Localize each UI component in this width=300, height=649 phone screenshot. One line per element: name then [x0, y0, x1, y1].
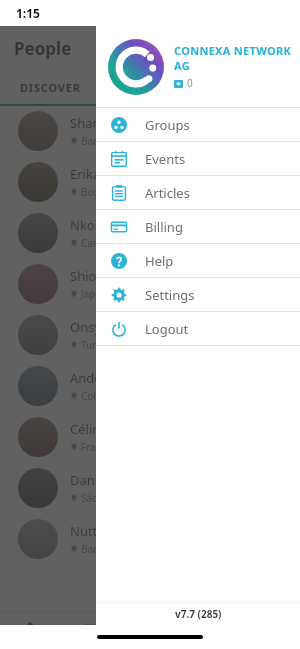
staticText: CONNEXA NETWORK AG	[174, 43, 300, 73]
staticText: Help	[145, 252, 174, 270]
button[interactable]: Erika G	[0, 157, 300, 207]
staticText: Nkonde	[70, 216, 119, 234]
staticText: Logout	[145, 320, 189, 338]
staticText: Onsy O	[70, 318, 115, 336]
button[interactable]: Settings	[96, 278, 300, 311]
staticText: 0	[187, 76, 193, 90]
staticText: Cameroon	[81, 236, 131, 250]
button[interactable]: Anders	[0, 361, 300, 411]
staticText: Colombia	[81, 389, 126, 403]
button[interactable]: Céline	[0, 412, 300, 462]
staticText: Articles	[145, 184, 190, 202]
button[interactable]: Nkonde	[0, 208, 300, 258]
staticText: Bangkok	[81, 542, 123, 556]
button[interactable]: Shiori H	[0, 259, 300, 309]
staticText: Billing	[145, 218, 183, 236]
button[interactable]: Billing	[96, 210, 300, 243]
staticText: São Paulo	[81, 491, 128, 505]
staticText: Groups	[145, 116, 190, 134]
staticText: Tunisia	[81, 338, 114, 352]
button[interactable]: Tab 2	[120, 613, 180, 649]
button[interactable]: Onsy O	[0, 310, 300, 360]
staticText: Daniel	[70, 471, 109, 489]
staticText: Anders	[70, 369, 114, 387]
staticText: Events	[145, 150, 186, 168]
button[interactable]: Articles	[96, 176, 300, 209]
staticText: Bangladesh	[81, 134, 137, 148]
button[interactable]: CONNEXA NETWORK AG	[96, 26, 300, 107]
staticText: 1:15	[16, 5, 40, 21]
button[interactable]: Nuttawut	[0, 514, 300, 564]
staticText: v7.7 (285)	[175, 607, 222, 621]
staticText: Nuttawut	[70, 522, 128, 540]
staticText: DISCOVER	[20, 80, 81, 95]
button[interactable]: Help	[96, 244, 300, 277]
button[interactable]: Events	[96, 142, 300, 175]
button[interactable]: Groups	[96, 108, 300, 141]
button[interactable]: Tab 0	[0, 613, 60, 649]
button[interactable]: Daniel	[0, 463, 300, 513]
staticText: People	[14, 37, 72, 60]
staticText: Japan	[81, 287, 108, 301]
staticText: Bogota	[81, 185, 115, 199]
button[interactable]: Tab 3	[180, 613, 240, 649]
staticText: Céline	[70, 420, 108, 438]
button[interactable]: Tab 1	[60, 613, 120, 649]
staticText: Shamim	[70, 114, 121, 132]
staticText: Erika G	[70, 165, 114, 183]
staticText: France	[81, 440, 113, 454]
staticText: Shiori H	[70, 267, 119, 285]
button[interactable]: Shamim	[0, 106, 300, 156]
staticText: Settings	[145, 286, 195, 304]
button[interactable]: Logout	[96, 312, 300, 345]
